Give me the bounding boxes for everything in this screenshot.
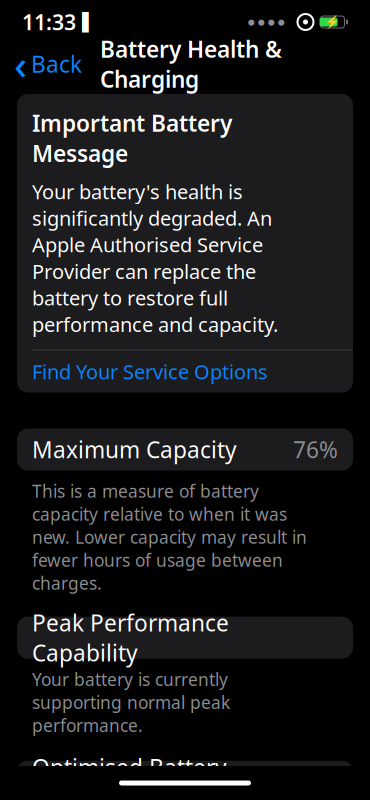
staticText: 11:33 [22,8,76,36]
staticText: Your battery's health is significantly d… [32,178,278,338]
staticText: Battery Health & Charging [100,34,282,94]
button[interactable]: ‹ [4,44,92,84]
staticText: 76% [293,434,338,465]
staticText: Your battery is currently supporting nor… [32,668,230,737]
staticText: Back [31,49,82,79]
staticText: Optimised Battery Charging [32,752,227,800]
staticText: ‹ [14,37,27,90]
staticText: Peak Performance Capability [32,607,229,668]
staticText: ● ● ● ● [248,17,285,27]
staticText: Important Battery Message [32,108,232,168]
staticText: ⚡ [325,15,340,29]
staticText: This is a measure of battery capacity re… [32,480,307,595]
staticText: ▌ [76,12,95,32]
staticText: Maximum Capacity [32,434,237,465]
staticText: Find Your Service Options [32,358,268,385]
button[interactable]: Optimised Battery Charging [17,761,353,800]
staticText [285,7,297,37]
button[interactable]: Find Your Service Options [17,351,353,393]
staticText [314,7,320,37]
